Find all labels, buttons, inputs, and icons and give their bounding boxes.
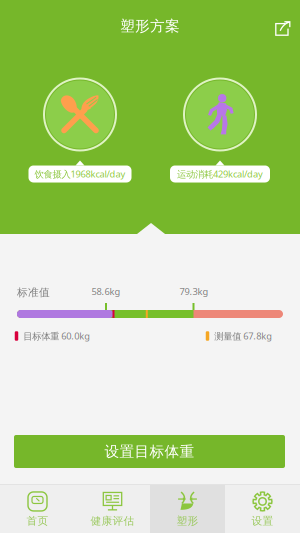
button[interactable]: 设置目标体重	[14, 435, 285, 468]
staticText: 79.3kg	[179, 285, 208, 298]
button[interactable]: 健康评估	[75, 485, 150, 533]
staticText: 设置目标体重	[104, 442, 194, 460]
staticText: 目标体重 60.0kg	[23, 330, 90, 342]
staticText: 饮食摄入1968kcal/day	[34, 168, 125, 180]
button[interactable]: 设置	[225, 485, 300, 533]
staticText: 运动消耗429kcal/day	[177, 168, 263, 180]
staticText: 设置	[251, 514, 273, 527]
staticText: 58.6kg	[91, 285, 120, 298]
button[interactable]: 塑形	[150, 485, 225, 533]
staticText: 首页	[26, 514, 48, 527]
staticText: 测量值 67.8kg	[214, 330, 272, 342]
button[interactable]: 首页	[0, 485, 75, 533]
staticText: 健康评估	[90, 514, 134, 527]
staticText: 塑形方案	[120, 17, 180, 35]
button[interactable]: 分享	[266, 12, 300, 46]
staticText: 塑形	[176, 514, 198, 527]
staticText: 标准值	[17, 286, 50, 299]
